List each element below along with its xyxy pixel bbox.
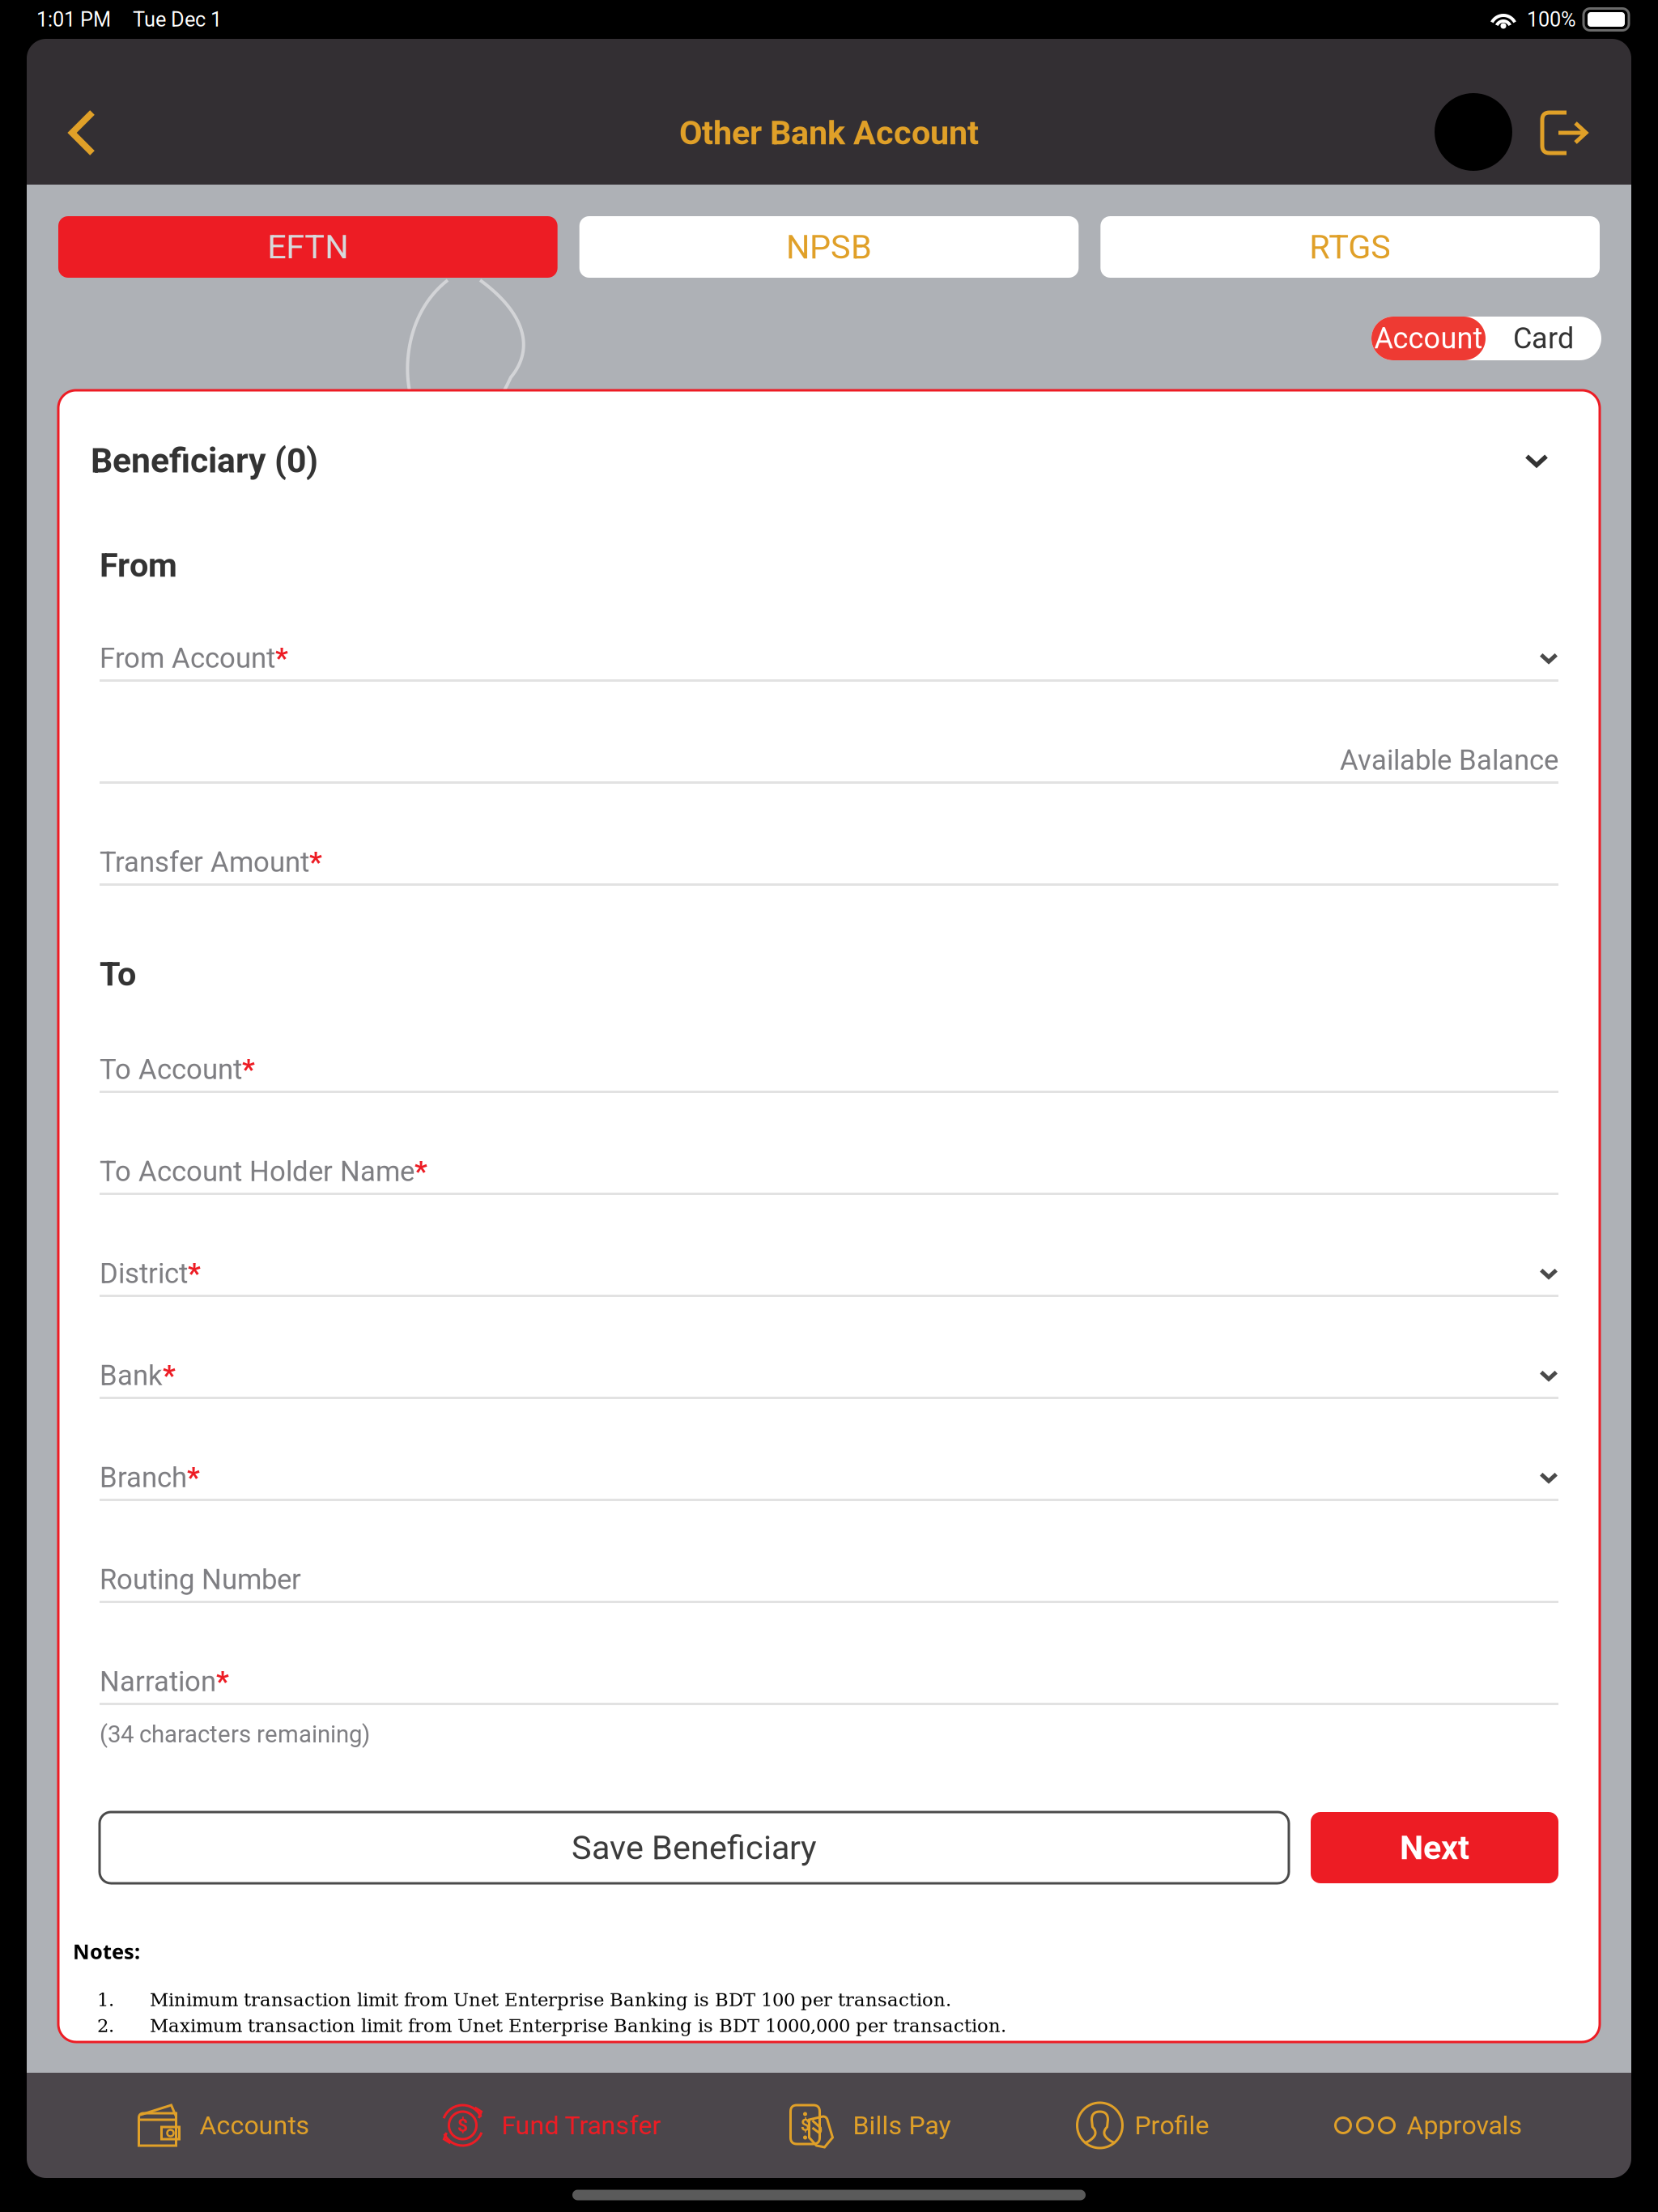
- staticText: To: [100, 954, 136, 994]
- button[interactable]: Profile: [1077, 2073, 1209, 2178]
- button[interactable]: Save Beneficiary: [100, 1812, 1289, 1883]
- staticText: RTGS: [1309, 227, 1391, 267]
- staticText: Other Bank Account: [679, 113, 979, 152]
- button[interactable]: Card: [1486, 317, 1601, 360]
- staticText: Available Balance: [1340, 744, 1558, 777]
- button[interactable]: EFTN: [58, 216, 558, 278]
- staticText: Beneficiary (0): [91, 440, 318, 481]
- staticText: EFTN: [267, 227, 348, 267]
- staticText: *: [163, 1359, 176, 1392]
- staticText: Bank: [100, 1359, 163, 1392]
- button[interactable]: Back: [43, 39, 121, 185]
- staticText: $: [457, 2115, 468, 2136]
- staticText: Branch: [100, 1461, 187, 1494]
- button[interactable]: NPSB: [579, 216, 1079, 278]
- staticText: (34 characters remaining): [100, 1720, 370, 1748]
- staticText: 1:01 PM: [36, 7, 111, 31]
- staticText: NPSB: [786, 227, 872, 267]
- button[interactable]: Next: [1311, 1812, 1558, 1883]
- staticText: Transfer Amount: [100, 846, 309, 879]
- staticText: Minimum transaction limit from Unet Ente…: [150, 1989, 951, 2011]
- button[interactable]: $: [436, 2073, 661, 2178]
- staticText: Accounts: [200, 2110, 310, 2141]
- staticText: Tue Dec 1: [133, 7, 222, 31]
- staticText: *: [309, 846, 322, 879]
- button[interactable]: Log out: [1512, 39, 1589, 185]
- staticText: $: [801, 2116, 810, 2135]
- staticText: Fund Transfer: [502, 2110, 661, 2141]
- staticText: Next: [1400, 1828, 1469, 1867]
- staticText: Notes:: [73, 1937, 140, 1965]
- staticText: Account: [1374, 321, 1483, 356]
- staticText: Bills Pay: [853, 2110, 951, 2141]
- staticText: To Account Holder Name: [100, 1155, 414, 1188]
- staticText: *: [188, 1257, 201, 1290]
- staticText: Routing Number: [100, 1563, 301, 1596]
- button[interactable]: Accounts: [136, 2073, 310, 2178]
- staticText: District: [100, 1257, 188, 1290]
- staticText: *: [242, 1053, 255, 1086]
- staticText: *: [187, 1461, 200, 1494]
- staticText: 1.: [97, 1989, 114, 2011]
- staticText: 2.: [97, 2015, 114, 2036]
- button[interactable]: RTGS: [1100, 216, 1600, 278]
- staticText: *: [414, 1155, 427, 1188]
- staticText: Narration: [100, 1665, 216, 1698]
- staticText: From: [100, 546, 177, 585]
- staticText: 100%: [1527, 7, 1576, 31]
- button[interactable]: Approvals: [1335, 2073, 1522, 2178]
- staticText: Approvals: [1407, 2110, 1522, 2141]
- button[interactable]: Account: [1371, 317, 1486, 360]
- staticText: To Account: [100, 1053, 242, 1086]
- staticText: *: [275, 642, 288, 675]
- staticText: Profile: [1135, 2110, 1209, 2141]
- staticText: From Account: [100, 642, 275, 675]
- button[interactable]: $: [787, 2073, 951, 2178]
- staticText: Maximum transaction limit from Unet Ente…: [150, 2015, 1006, 2036]
- button[interactable]: Expand beneficiary list: [1515, 442, 1558, 479]
- staticText: Save Beneficiary: [572, 1828, 817, 1867]
- staticText: *: [216, 1665, 229, 1698]
- staticText: Card: [1513, 321, 1574, 356]
